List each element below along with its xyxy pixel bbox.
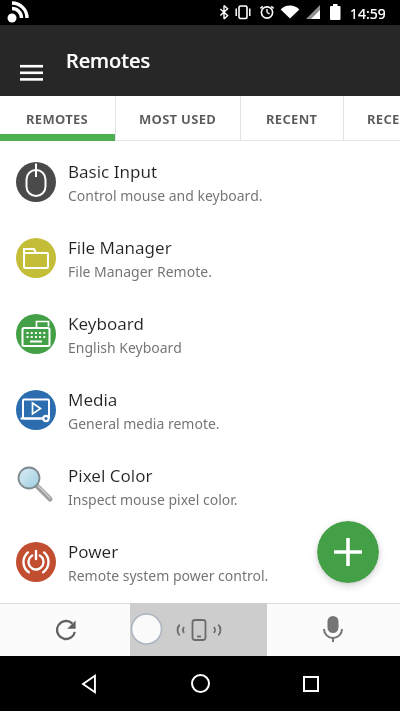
button[interactable] (8, 50, 54, 96)
button[interactable]: MOST USED (116, 96, 240, 141)
button[interactable] (274, 656, 348, 711)
button[interactable] (309, 606, 357, 654)
staticText: Inspect mouse pixel color. (68, 490, 238, 509)
staticText: RECENT (266, 110, 318, 128)
button[interactable] (163, 656, 237, 711)
button[interactable]: Pixel Color (0, 448, 400, 524)
button[interactable] (130, 603, 267, 656)
button[interactable]: Basic Input (0, 144, 400, 220)
button[interactable] (52, 656, 126, 711)
staticText: Remote system power control. (68, 566, 269, 585)
button[interactable] (317, 521, 379, 583)
staticText: File Manager Remote. (68, 262, 212, 281)
button[interactable]: RECENT (241, 96, 343, 141)
staticText: RECEIVED (367, 110, 400, 128)
staticText: Media (68, 388, 118, 411)
button[interactable]: Media (0, 372, 400, 448)
staticText: Keyboard (68, 312, 144, 335)
staticText: Power (68, 540, 119, 563)
button[interactable] (42, 606, 90, 654)
button[interactable]: REMOTES (0, 96, 115, 141)
staticText: Control mouse and keyboard. (68, 186, 263, 205)
staticText: REMOTES (26, 110, 89, 128)
staticText: English Keyboard (68, 338, 182, 357)
staticText: General media remote. (68, 414, 220, 433)
button[interactable]: Keyboard (0, 296, 400, 372)
button[interactable]: File Manager (0, 220, 400, 296)
staticText: Remotes (66, 47, 151, 74)
button[interactable]: Power (0, 524, 400, 600)
staticText: File Manager (68, 236, 172, 259)
staticText: Pixel Color (68, 464, 153, 487)
staticText: MOST USED (139, 110, 217, 128)
staticText: Basic Input (68, 160, 158, 183)
button[interactable]: RECEIVED (344, 96, 400, 141)
staticText: 14:59 (350, 4, 386, 23)
